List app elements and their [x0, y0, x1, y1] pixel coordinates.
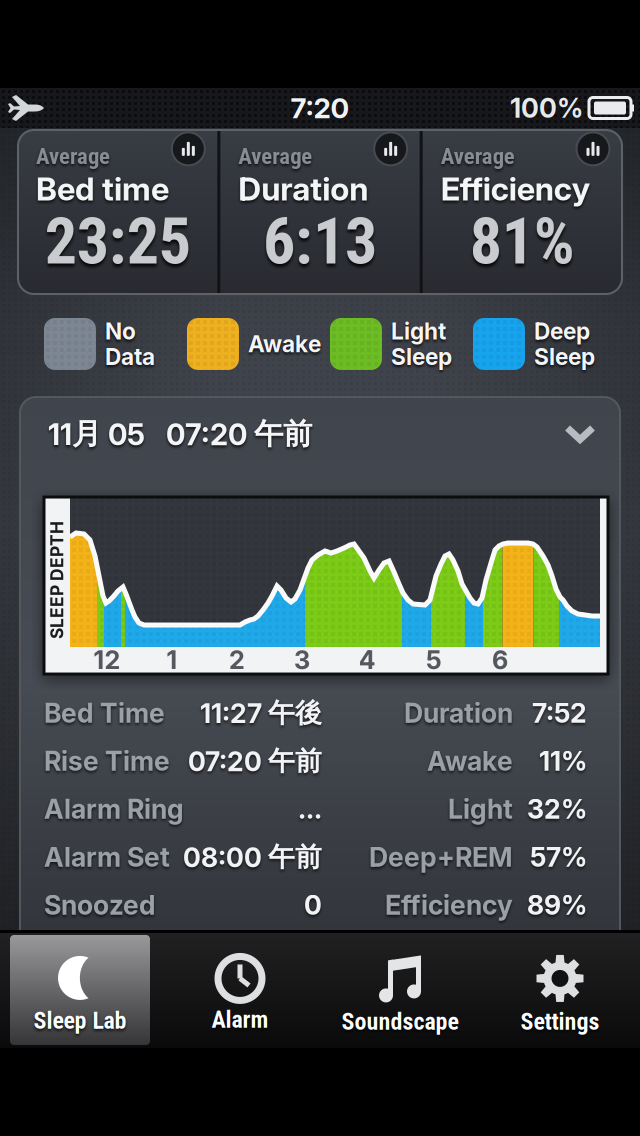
staticText: Sleep	[391, 343, 452, 370]
staticText: 100%	[510, 92, 583, 124]
staticText: 6	[492, 645, 508, 675]
staticText: 07:20 午前	[188, 744, 322, 778]
button[interactable]: Settings	[480, 935, 640, 1045]
button[interactable]: Statistics	[576, 132, 610, 166]
staticText: Alarm	[211, 1005, 268, 1033]
staticText: 7:20	[290, 91, 349, 125]
staticText: 5	[426, 645, 442, 675]
staticText: Settings	[520, 1007, 599, 1035]
staticText: 4	[358, 645, 375, 675]
staticText: 12	[93, 645, 120, 675]
staticText: 32%	[527, 793, 587, 825]
staticText: Efficiency	[441, 169, 590, 208]
staticText: Awake	[248, 330, 321, 358]
staticText: Duration	[238, 169, 368, 208]
staticText: 6:13	[263, 204, 377, 279]
staticText: Awake	[427, 745, 513, 777]
staticText: Bed time	[36, 169, 169, 208]
staticText: Light	[448, 793, 513, 825]
staticText: 7:52	[532, 697, 587, 729]
staticText: Data	[105, 343, 155, 370]
staticText: Average	[441, 143, 515, 169]
staticText: Bed Time	[44, 697, 165, 729]
staticText: 11:27 午後	[200, 696, 322, 730]
staticText: 08:00 午前	[183, 840, 322, 874]
staticText: 81%	[470, 204, 575, 279]
staticText: Average	[36, 143, 110, 169]
staticText: Alarm Ring	[44, 793, 184, 825]
staticText: 89%	[527, 889, 587, 921]
staticText: 1	[166, 645, 177, 675]
staticText: 0	[304, 889, 322, 921]
staticText: Rise Time	[44, 745, 170, 777]
staticText: Alarm Set	[44, 841, 170, 873]
button[interactable]: Statistics	[171, 132, 205, 166]
staticText: Deep+REM	[369, 841, 513, 873]
button[interactable]: Statistics	[374, 132, 408, 166]
staticText: 3	[294, 645, 310, 675]
button[interactable]: Alarm	[160, 935, 320, 1045]
button[interactable]: Sleep Lab	[0, 935, 160, 1045]
staticText: Sleep	[534, 343, 595, 370]
staticText: No	[105, 318, 136, 345]
staticText: 2	[229, 645, 245, 675]
staticText: 11月 05 07:20 午前	[48, 415, 312, 452]
staticText: 57%	[530, 841, 587, 873]
staticText: Duration	[404, 697, 513, 729]
staticText: Efficiency	[385, 889, 513, 921]
staticText: 11%	[539, 745, 587, 777]
button[interactable]: Soundscape	[320, 935, 480, 1045]
button[interactable]: 11月 05 07:20 午前	[20, 397, 620, 471]
staticText: Deep	[534, 318, 590, 345]
staticText: 23:25	[45, 204, 191, 279]
staticText: SLEEP DEPTH	[0, 569, 116, 590]
staticText: Average	[238, 143, 312, 169]
staticText: Snoozed	[44, 889, 156, 921]
staticText: Sleep Lab	[33, 1006, 126, 1034]
staticText: Soundscape	[341, 1007, 458, 1035]
staticText: Light	[391, 318, 446, 345]
staticText: ...	[298, 793, 322, 825]
